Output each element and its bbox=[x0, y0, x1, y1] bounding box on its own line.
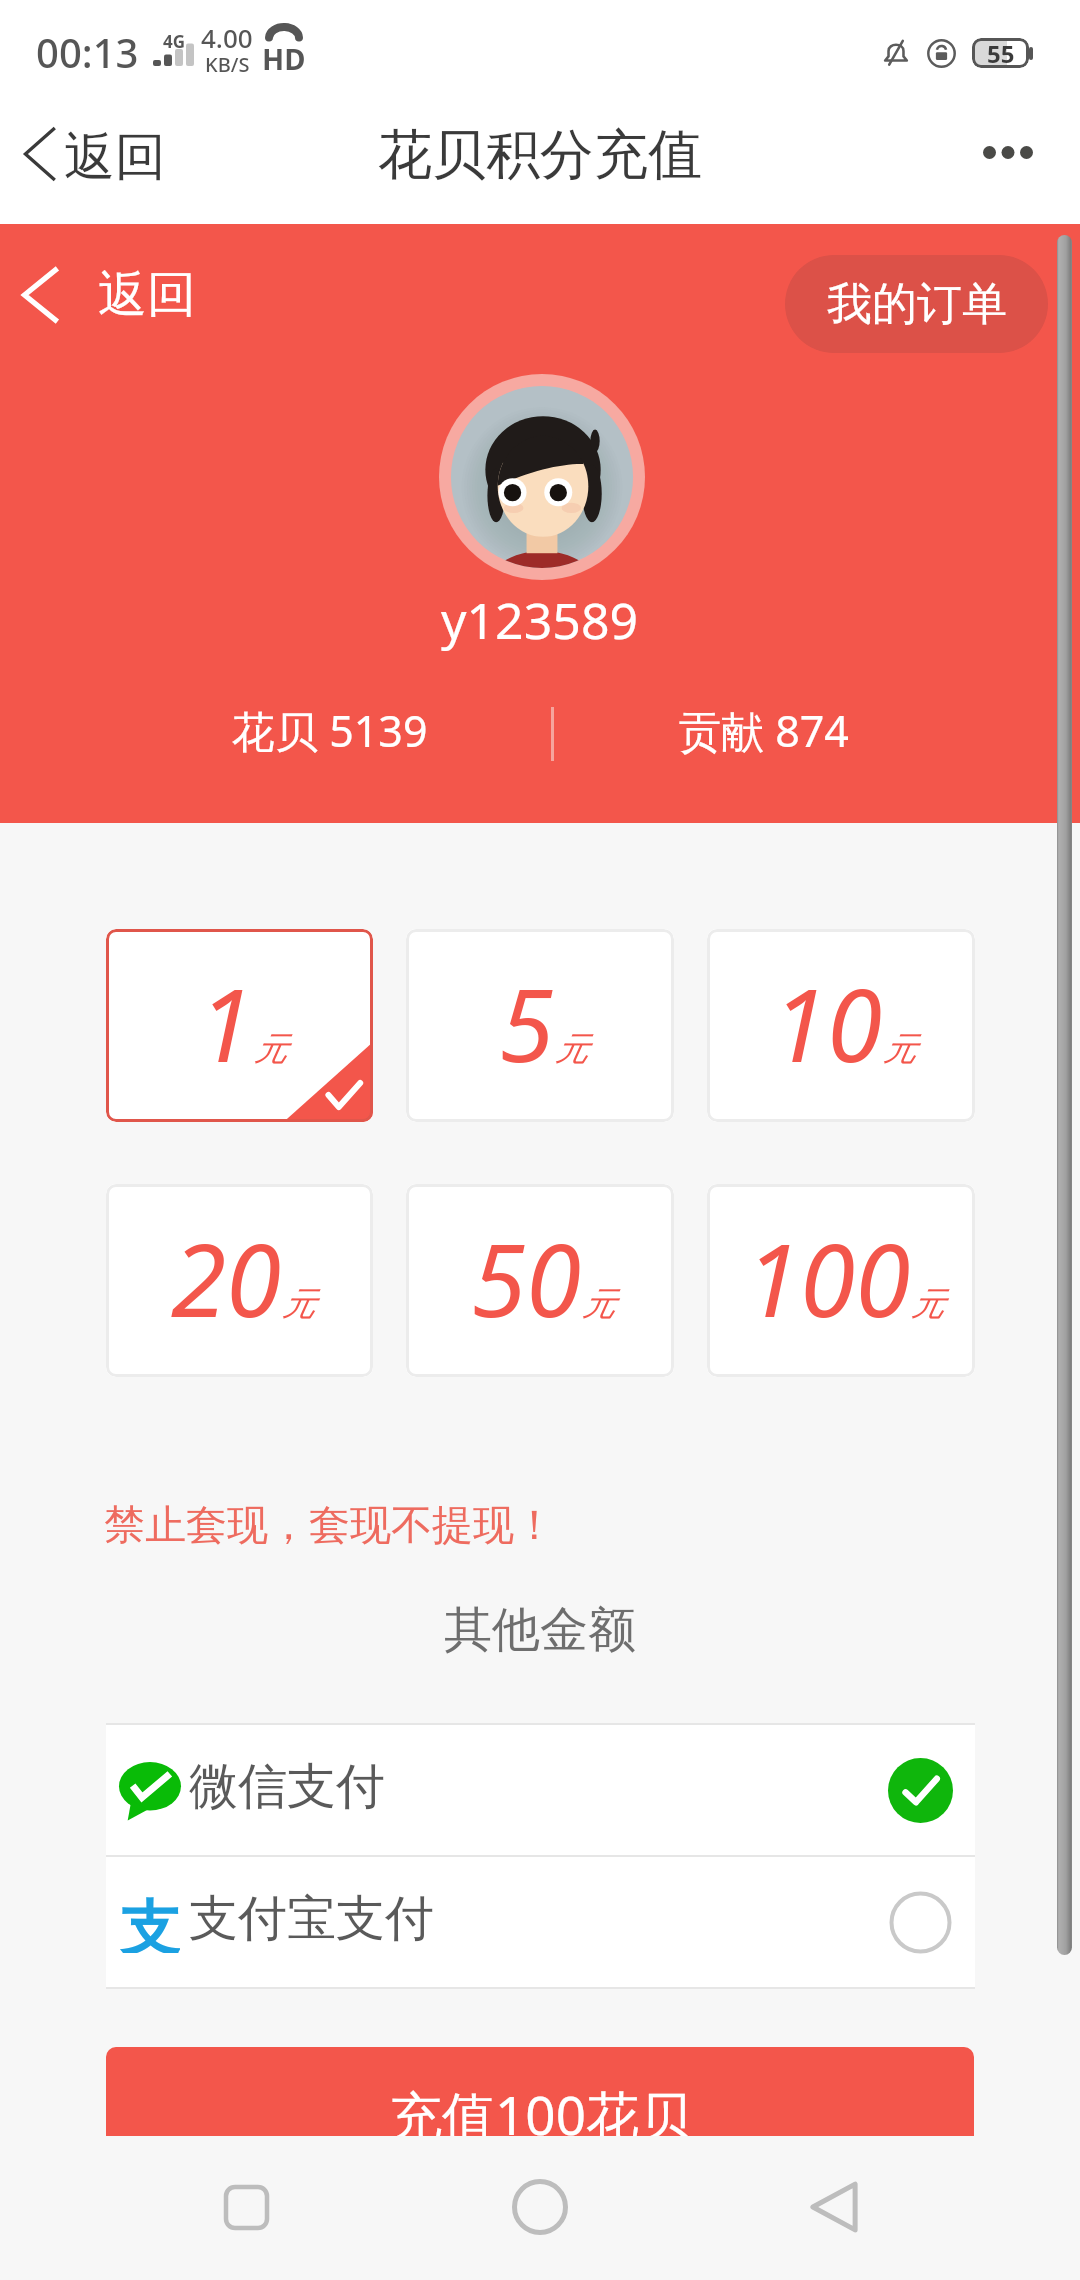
staticText: 花贝 5139 bbox=[232, 701, 428, 760]
button[interactable]: 我的订单 bbox=[785, 255, 1048, 353]
staticText: 5 bbox=[499, 955, 555, 1091]
button[interactable]: 充值100花贝 bbox=[106, 2047, 974, 2136]
staticText: 禁止套现，套现不提现！ bbox=[104, 1500, 555, 1552]
button[interactable]: 50 bbox=[406, 1184, 674, 1377]
button[interactable]: Home bbox=[480, 2147, 600, 2267]
staticText: 1 bbox=[198, 955, 254, 1091]
button[interactable]: 支 bbox=[106, 1857, 975, 1987]
button[interactable]: 10 bbox=[707, 929, 975, 1122]
staticText: 返回 bbox=[98, 264, 196, 326]
staticText: 返回 bbox=[64, 125, 166, 189]
button[interactable]: 返回 bbox=[0, 108, 202, 200]
staticText: 贡献 874 bbox=[678, 701, 849, 760]
staticText: 微信支付 bbox=[189, 1756, 385, 1818]
staticText: 花贝积分充值 bbox=[378, 121, 702, 189]
staticText: 元 bbox=[911, 1283, 944, 1325]
staticText: 4G bbox=[163, 30, 186, 53]
button[interactable]: Back bbox=[774, 2147, 894, 2267]
staticText: HD bbox=[262, 39, 306, 78]
button[interactable]: 微信支付 bbox=[106, 1725, 975, 1855]
staticText: 元 bbox=[254, 1028, 287, 1070]
staticText: 10 bbox=[772, 955, 883, 1091]
staticText: 充值100花贝 bbox=[389, 2078, 692, 2136]
staticText: 55 bbox=[987, 38, 1015, 67]
staticText: 50 bbox=[471, 1210, 582, 1346]
staticText: 我的订单 bbox=[827, 276, 1007, 333]
button[interactable]: 100 bbox=[707, 1184, 975, 1377]
staticText: 4.00 bbox=[201, 20, 253, 55]
button[interactable]: 1 bbox=[106, 929, 373, 1122]
button[interactable]: Recents bbox=[186, 2147, 306, 2267]
staticText: 元 bbox=[555, 1028, 588, 1070]
staticText: 元 bbox=[883, 1028, 916, 1070]
button[interactable]: 返回 bbox=[0, 254, 214, 336]
button[interactable]: 20 bbox=[106, 1184, 373, 1377]
staticText: 元 bbox=[582, 1283, 615, 1325]
staticText: 20 bbox=[171, 1210, 282, 1346]
staticText: 支付宝支付 bbox=[189, 1888, 434, 1950]
staticText: 元 bbox=[282, 1283, 315, 1325]
button[interactable]: 5 bbox=[406, 929, 674, 1122]
staticText: KB/S bbox=[205, 51, 250, 78]
staticText: y123589 bbox=[441, 586, 639, 654]
staticText: 支 bbox=[120, 1891, 180, 1953]
staticText: 100 bbox=[745, 1210, 911, 1346]
staticText: 00:13 bbox=[36, 25, 139, 79]
staticText: 其他金额 bbox=[444, 1600, 636, 1660]
button[interactable]: More options bbox=[948, 112, 1068, 193]
